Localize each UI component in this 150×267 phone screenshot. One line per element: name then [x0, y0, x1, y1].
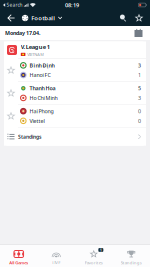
staticText: Hai Phong — [30, 107, 54, 115]
staticText: 1 — [138, 71, 141, 79]
staticText: Standings — [121, 260, 142, 265]
button[interactable]: LIVE — [37, 245, 75, 267]
staticText: Thanh Hoa — [30, 85, 56, 92]
button[interactable]: 1 — [75, 245, 112, 267]
staticText: All Games — [9, 260, 28, 265]
button[interactable]: Football — [20, 10, 62, 25]
staticText: Monday 17.04. — [5, 29, 40, 37]
staticText: 08:19 — [65, 1, 79, 9]
staticText: Search — [6, 2, 22, 8]
staticText: 3 — [138, 62, 141, 69]
button[interactable]: Hai Phong — [4, 105, 146, 127]
button[interactable]: Standings — [4, 128, 146, 146]
button[interactable]: Thanh Hoa — [4, 82, 146, 104]
button[interactable]: Favourites — [131, 10, 147, 25]
staticText: Hanoi FC — [30, 71, 51, 79]
button[interactable]: V.League 1 — [4, 41, 146, 58]
staticText: Ho Chi Minh — [30, 94, 58, 102]
staticText: 5 — [138, 85, 141, 92]
staticText: Football — [31, 14, 55, 22]
button[interactable]: Back — [2, 10, 20, 25]
button[interactable]: Standings — [112, 245, 150, 267]
staticText: LIVE — [52, 260, 60, 265]
button[interactable]: All Games — [0, 245, 37, 267]
staticText: 1 — [100, 247, 102, 253]
staticText: Bình Định — [30, 62, 55, 69]
staticText: 0 — [138, 117, 141, 124]
button[interactable]: Search — [115, 10, 131, 25]
staticText: V.League 1 — [21, 43, 50, 51]
staticText: Viettel — [30, 117, 45, 124]
button[interactable]: Bình Định — [4, 59, 146, 81]
staticText: Favorites — [85, 260, 103, 265]
staticText: 0 — [138, 107, 141, 115]
staticText: 3 — [138, 94, 141, 102]
button[interactable]: Calendar — [132, 26, 145, 39]
staticText: Standings — [18, 133, 41, 140]
staticText: VIETNAM — [27, 52, 44, 57]
